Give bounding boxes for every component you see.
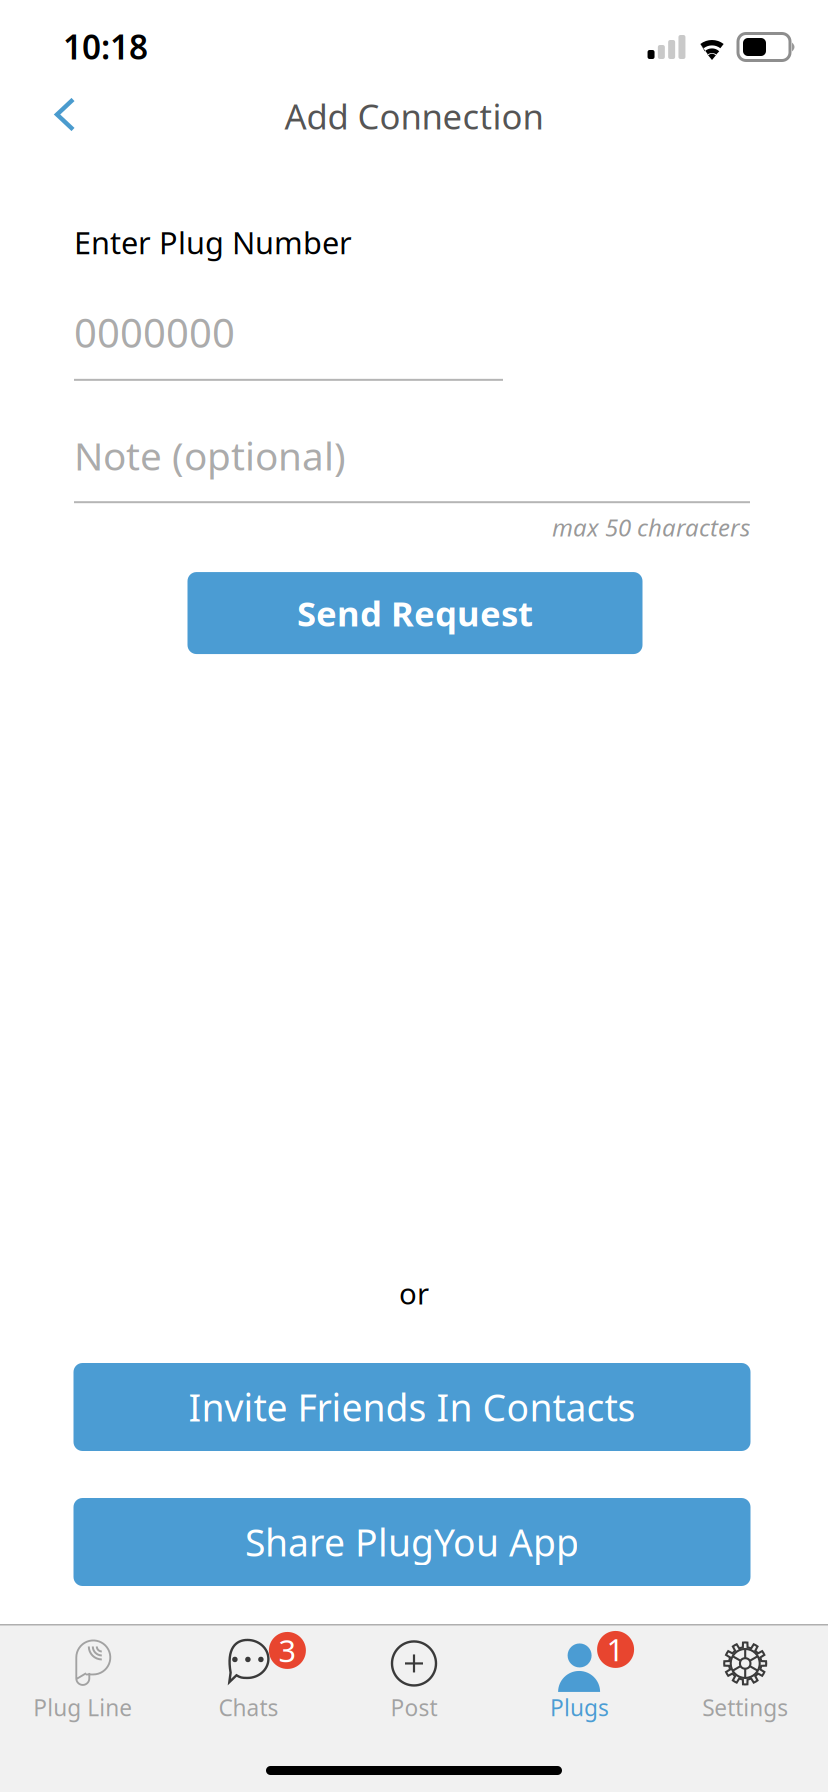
button[interactable]: 1 bbox=[497, 1635, 662, 1725]
staticText: Plugs bbox=[550, 1692, 609, 1722]
staticText: Plug Line bbox=[33, 1692, 132, 1722]
staticText: Enter Plug Number bbox=[74, 222, 352, 263]
staticText: Send Request bbox=[297, 590, 533, 636]
button[interactable]: Back bbox=[33, 81, 97, 142]
staticText: Add Connection bbox=[284, 93, 543, 139]
staticText: 3 bbox=[278, 1630, 296, 1671]
staticText: Settings bbox=[702, 1692, 788, 1722]
staticText: 0000000 bbox=[74, 306, 235, 359]
staticText: max 50 characters bbox=[552, 511, 750, 543]
button[interactable]: Invite Friends In Contacts bbox=[73, 1363, 750, 1451]
staticText: 1 bbox=[607, 1629, 625, 1670]
staticText: Invite Friends In Contacts bbox=[188, 1382, 635, 1432]
staticText: or bbox=[399, 1273, 429, 1312]
button[interactable]: Plug Line bbox=[0, 1635, 166, 1725]
staticText: Post bbox=[390, 1692, 437, 1722]
staticText: Note (optional) bbox=[74, 430, 346, 481]
button[interactable]: Settings bbox=[662, 1635, 828, 1725]
staticText: Share PlugYou App bbox=[245, 1517, 579, 1567]
button[interactable]: 3 bbox=[166, 1635, 331, 1725]
staticText: 10:18 bbox=[63, 24, 148, 69]
button[interactable]: Send Request bbox=[187, 572, 642, 654]
staticText: Chats bbox=[218, 1692, 278, 1722]
button[interactable]: Post bbox=[331, 1635, 497, 1725]
button[interactable]: Share PlugYou App bbox=[73, 1498, 750, 1586]
